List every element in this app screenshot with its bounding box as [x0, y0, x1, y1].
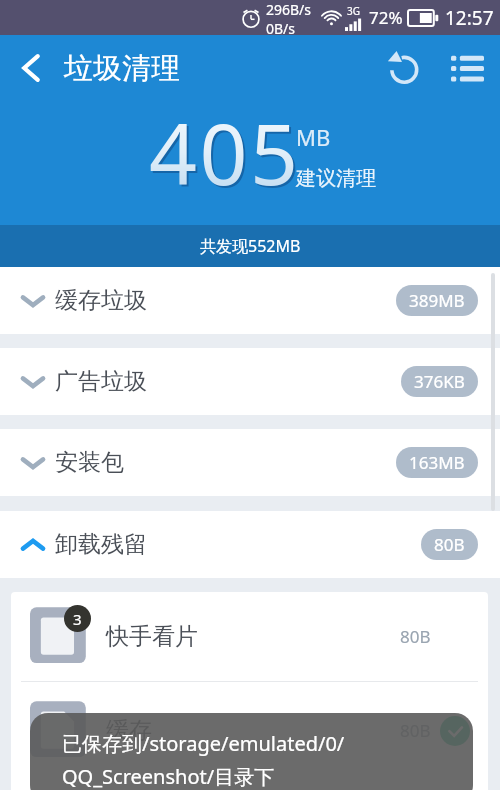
- staticText: 安装包: [55, 448, 124, 477]
- button[interactable]: Refresh: [374, 35, 436, 100]
- button[interactable]: 缓存垃圾: [0, 267, 500, 334]
- staticText: 快手看片: [106, 622, 198, 651]
- staticText: 405: [149, 95, 301, 209]
- staticText: 共发现552MB: [200, 235, 301, 257]
- staticText: 296B/s: [266, 0, 312, 19]
- staticText: 389MB: [409, 289, 465, 312]
- staticText: 垃圾清理: [64, 50, 180, 87]
- staticText: 72%: [369, 6, 403, 29]
- staticText: 卸载残留: [55, 530, 147, 559]
- button[interactable]: 卸载残留: [0, 511, 500, 578]
- staticText: 405: [151, 97, 303, 211]
- staticText: 80B: [400, 625, 431, 648]
- staticText: MB: [296, 122, 331, 152]
- staticText: 已保存到/storage/emulated/0/ QQ_Screenshot/目…: [62, 730, 345, 790]
- staticText: 163MB: [409, 451, 465, 474]
- button[interactable]: 3: [11, 592, 488, 681]
- button[interactable]: Back: [0, 35, 62, 100]
- button[interactable]: List: [436, 35, 498, 100]
- staticText: 0B/s: [266, 19, 296, 35]
- staticText: 80B: [400, 719, 431, 742]
- staticText: 376KB: [414, 370, 465, 393]
- staticText: 3: [73, 609, 82, 629]
- staticText: 建议清理: [296, 166, 376, 191]
- staticText: 广告垃圾: [55, 367, 147, 396]
- button[interactable]: 安装包: [0, 429, 500, 496]
- staticText: 缓存: [106, 716, 152, 745]
- button[interactable]: 缓存: [11, 682, 488, 779]
- staticText: 80B: [434, 533, 465, 556]
- staticText: 缓存垃圾: [55, 286, 147, 315]
- staticText: 12:57: [445, 5, 494, 31]
- button[interactable]: 广告垃圾: [0, 348, 500, 415]
- staticText: 3G: [347, 4, 360, 18]
- button[interactable]: Selected: [440, 716, 470, 746]
